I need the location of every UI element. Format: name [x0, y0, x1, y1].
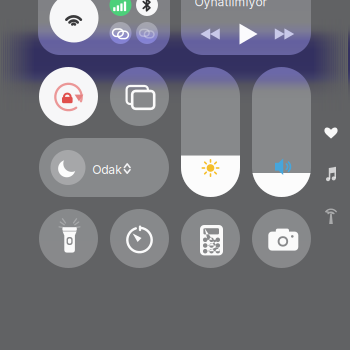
button[interactable]: Next track: [0, 0, 350, 350]
button[interactable]: Connectivity: [0, 0, 350, 350]
button[interactable]: Favourites: [0, 0, 350, 350]
button[interactable]: Focus: [0, 0, 350, 350]
staticText: Oynatılmıyor: [194, 0, 267, 9]
button[interactable]: Cellular Data: [0, 0, 350, 350]
button[interactable]: Previous track: [0, 0, 350, 350]
staticText: Odak: [92, 162, 122, 177]
button[interactable]: Wi-Fi: [0, 0, 350, 350]
button[interactable]: Camera: [0, 0, 350, 350]
button[interactable]: Play: [0, 0, 350, 350]
button[interactable]: Bluetooth: [0, 0, 350, 350]
button[interactable]: Timer: [0, 0, 350, 350]
button[interactable]: Flashlight: [0, 0, 350, 350]
button[interactable]: Brightness: [0, 0, 350, 350]
button[interactable]: Now Playing: [0, 0, 350, 350]
button[interactable]: Volume: [0, 0, 350, 350]
button[interactable]: Rotation Lock: [0, 0, 350, 350]
button[interactable]: Calculator: [0, 0, 350, 350]
button[interactable]: AirDrop: [0, 0, 350, 350]
button[interactable]: Personal Hotspot: [0, 0, 350, 350]
button[interactable]: Screen Mirroring: [0, 0, 350, 350]
